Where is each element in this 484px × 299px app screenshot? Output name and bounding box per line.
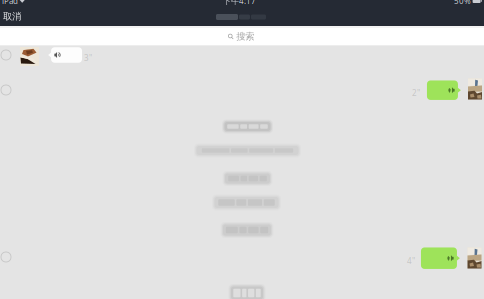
staticText: 取消 (3, 11, 21, 22)
button[interactable]: Play voice message (427, 80, 461, 100)
staticText: 2" (412, 88, 420, 98)
staticText: iPad (2, 0, 18, 6)
button[interactable]: Select message (1, 85, 11, 95)
button[interactable]: Select message (1, 252, 11, 262)
staticText: 4" (407, 256, 415, 266)
staticText: 3" (84, 53, 92, 63)
button[interactable]: Play voice message (421, 247, 460, 269)
staticText: 下午4:17 (223, 0, 256, 6)
button[interactable]: Play voice message (48, 47, 82, 63)
button[interactable]: Select message (1, 50, 11, 60)
button[interactable]: 搜索 (0, 28, 484, 45)
staticText: 50% (454, 0, 471, 6)
staticText: 搜索 (236, 31, 254, 42)
button[interactable]: 取消 (0, 8, 27, 25)
